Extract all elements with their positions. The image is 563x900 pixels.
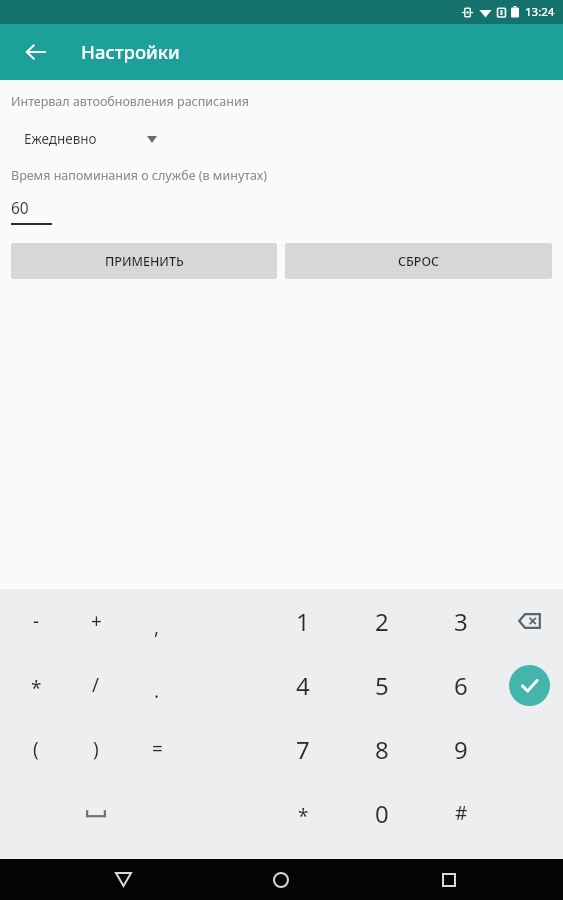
button[interactable]: 2 bbox=[349, 589, 415, 653]
staticText: + bbox=[91, 608, 102, 634]
staticText: ПРИМЕНИТЬ bbox=[105, 253, 184, 270]
button[interactable]: ) bbox=[66, 717, 126, 781]
staticText: ( bbox=[33, 736, 39, 762]
staticText: 7 bbox=[296, 733, 310, 766]
button[interactable]: ПРИМЕНИТЬ bbox=[11, 243, 277, 279]
button[interactable]: Готово bbox=[496, 653, 562, 717]
staticText: / bbox=[92, 672, 100, 698]
staticText: 2 bbox=[375, 605, 389, 638]
button[interactable]: Ежедневно bbox=[11, 126, 161, 152]
button[interactable]: . bbox=[127, 653, 187, 717]
staticText: 1 bbox=[296, 605, 310, 638]
button[interactable]: , bbox=[127, 589, 187, 653]
button[interactable]: 3 bbox=[428, 589, 494, 653]
staticText: Ежедневно bbox=[24, 130, 97, 148]
button[interactable]: 4 bbox=[270, 653, 336, 717]
button[interactable]: - bbox=[6, 589, 66, 653]
staticText: # bbox=[455, 800, 468, 826]
staticText: * bbox=[31, 675, 42, 701]
button[interactable]: * bbox=[270, 781, 336, 845]
staticText: 9 bbox=[454, 733, 468, 766]
staticText: Настройки bbox=[81, 39, 180, 64]
staticText: 13:24 bbox=[525, 4, 555, 20]
staticText: 4 bbox=[296, 669, 310, 702]
button[interactable]: ( bbox=[6, 717, 66, 781]
staticText: Интервал автообновления расписания bbox=[11, 93, 249, 110]
button[interactable]: Обзор bbox=[425, 859, 473, 900]
staticText: 6 bbox=[454, 669, 468, 702]
button[interactable]: + bbox=[66, 589, 126, 653]
button[interactable]: 5 bbox=[349, 653, 415, 717]
staticText: * bbox=[298, 803, 309, 829]
staticText: - bbox=[33, 608, 40, 634]
button[interactable]: # bbox=[428, 781, 494, 845]
staticText: 3 bbox=[454, 605, 468, 638]
button[interactable]: СБРОС bbox=[285, 243, 552, 279]
button[interactable]: Назад bbox=[99, 859, 147, 900]
button[interactable]: * bbox=[6, 653, 66, 717]
staticText: = bbox=[152, 736, 163, 762]
staticText: , bbox=[154, 614, 160, 640]
staticText: 5 bbox=[375, 669, 389, 702]
button[interactable]: 6 bbox=[428, 653, 494, 717]
button[interactable]: Пробел bbox=[66, 781, 126, 845]
staticText: ) bbox=[93, 736, 99, 762]
button[interactable]: Главный экран bbox=[257, 859, 305, 900]
button[interactable]: = bbox=[127, 717, 187, 781]
button[interactable]: 1 bbox=[270, 589, 336, 653]
staticText: 0 bbox=[375, 797, 389, 830]
button[interactable]: 9 bbox=[428, 717, 494, 781]
button[interactable]: 8 bbox=[349, 717, 415, 781]
staticText: 8 bbox=[375, 733, 389, 766]
button[interactable]: Удалить bbox=[496, 589, 562, 653]
button[interactable]: Назад bbox=[12, 28, 60, 76]
button[interactable]: 7 bbox=[270, 717, 336, 781]
staticText: СБРОС bbox=[398, 253, 440, 270]
button[interactable]: 0 bbox=[349, 781, 415, 845]
button[interactable]: / bbox=[66, 653, 126, 717]
staticText: 60 bbox=[11, 197, 29, 218]
staticText: Время напоминания о службе (в минутах) bbox=[11, 167, 267, 184]
staticText: . bbox=[154, 678, 160, 704]
